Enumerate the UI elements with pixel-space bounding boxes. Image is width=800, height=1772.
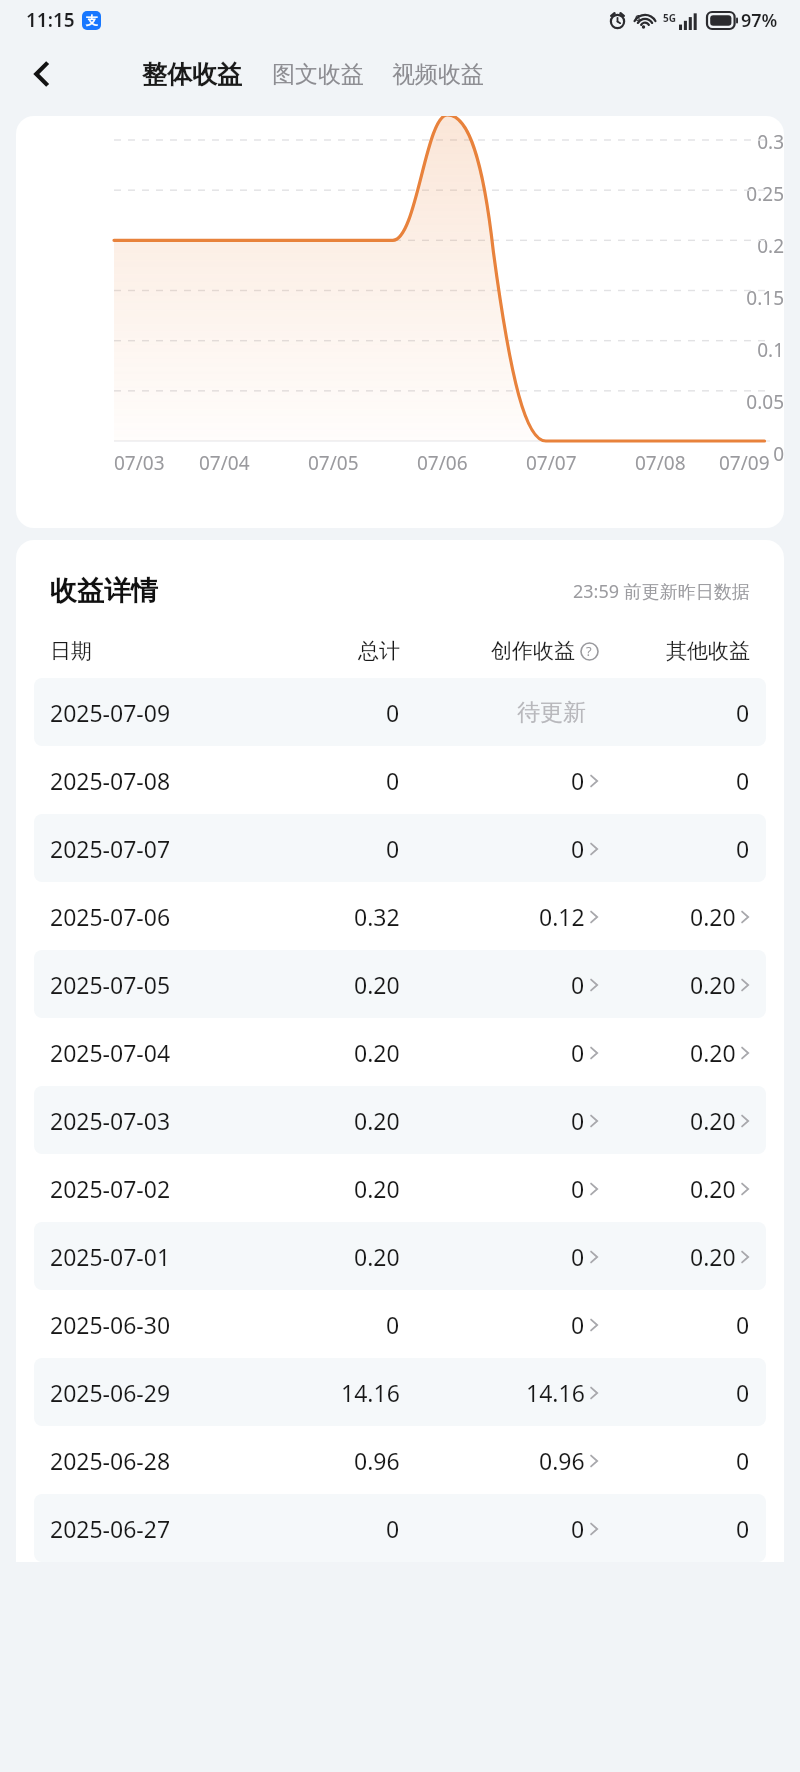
- staticText: 0: [571, 833, 585, 864]
- button[interactable]: Back: [18, 50, 66, 98]
- staticText: 6: [635, 11, 641, 23]
- staticText: 视频收益: [392, 60, 484, 89]
- staticText: 0: [386, 1513, 400, 1544]
- staticText: 07/07: [526, 450, 577, 476]
- staticText: 07/05: [308, 450, 359, 476]
- staticText: 07/08: [635, 450, 686, 476]
- staticText: 0: [736, 765, 750, 796]
- staticText: 0.20: [354, 1105, 400, 1136]
- staticText: 0: [571, 1173, 585, 1204]
- staticText: 07/04: [199, 450, 250, 476]
- staticText: 0.32: [354, 901, 400, 932]
- staticText: 0: [571, 969, 585, 1000]
- staticText: 创作收益: [491, 638, 575, 664]
- staticText: 14.16: [341, 1377, 400, 1408]
- staticText: 0.15: [706, 285, 784, 311]
- staticText: 0: [571, 1513, 585, 1544]
- staticText: 待更新: [517, 698, 586, 727]
- staticText: 总计: [358, 638, 400, 664]
- staticText: 0.20: [690, 1173, 736, 1204]
- staticText: 23:59 前更新昨日数据: [573, 579, 750, 604]
- staticText: 0.3: [706, 129, 784, 155]
- button[interactable]: 2025-07-04: [34, 1018, 766, 1086]
- staticText: 0: [571, 1037, 585, 1068]
- staticText: 2025-07-02: [50, 1173, 171, 1204]
- staticText: 0.20: [690, 1037, 736, 1068]
- staticText: 0.25: [706, 181, 784, 207]
- staticText: 整体收益: [142, 59, 242, 90]
- staticText: 0: [736, 1513, 750, 1544]
- button[interactable]: 2025-07-09: [34, 678, 766, 746]
- staticText: 0: [706, 441, 784, 467]
- staticText: 2025-07-09: [50, 697, 171, 728]
- button[interactable]: Help: [579, 641, 599, 661]
- staticText: 0: [571, 765, 585, 796]
- staticText: 11:15: [26, 7, 75, 33]
- button[interactable]: 图文收益: [268, 54, 368, 95]
- button[interactable]: 2025-07-06: [34, 882, 766, 950]
- staticText: 日期: [50, 638, 92, 664]
- staticText: 0.20: [690, 1105, 736, 1136]
- staticText: 2025-07-05: [50, 969, 171, 1000]
- staticText: 0: [386, 1309, 400, 1340]
- staticText: 2025-07-06: [50, 901, 171, 932]
- staticText: 0: [571, 1309, 585, 1340]
- staticText: 2025-07-08: [50, 765, 171, 796]
- staticText: 0.2: [706, 233, 784, 259]
- button[interactable]: 2025-06-29: [34, 1358, 766, 1426]
- staticText: 5G: [663, 11, 676, 25]
- staticText: 2025-07-03: [50, 1105, 171, 1136]
- staticText: 其他收益: [666, 638, 750, 664]
- staticText: 0.20: [354, 1241, 400, 1272]
- button[interactable]: 2025-07-05: [34, 950, 766, 1018]
- staticText: 0: [386, 833, 400, 864]
- button[interactable]: 整体收益: [138, 53, 246, 96]
- staticText: 0.12: [539, 901, 585, 932]
- staticText: 0: [571, 1105, 585, 1136]
- staticText: ?: [586, 642, 592, 660]
- staticText: 0.20: [690, 901, 736, 932]
- staticText: 支: [86, 13, 98, 28]
- staticText: 2025-07-04: [50, 1037, 171, 1068]
- staticText: 0: [736, 1445, 750, 1476]
- staticText: 07/09: [719, 450, 770, 476]
- staticText: 2025-06-28: [50, 1445, 171, 1476]
- staticText: 97%: [741, 8, 778, 33]
- button[interactable]: 2025-07-02: [34, 1154, 766, 1222]
- button[interactable]: 2025-07-03: [34, 1086, 766, 1154]
- button[interactable]: 2025-07-08: [34, 746, 766, 814]
- staticText: 0.96: [539, 1445, 585, 1476]
- staticText: 收益详情: [50, 574, 158, 608]
- staticText: 2025-06-30: [50, 1309, 171, 1340]
- button[interactable]: 2025-06-27: [34, 1494, 766, 1562]
- button[interactable]: 视频收益: [388, 54, 488, 95]
- staticText: 0: [571, 1241, 585, 1272]
- staticText: 0.05: [706, 389, 784, 415]
- staticText: 0.20: [354, 969, 400, 1000]
- button[interactable]: 2025-07-01: [34, 1222, 766, 1290]
- staticText: 0: [386, 697, 400, 728]
- staticText: 07/06: [417, 450, 468, 476]
- staticText: 0.96: [354, 1445, 400, 1476]
- staticText: 07/03: [114, 450, 165, 476]
- button[interactable]: 2025-07-07: [34, 814, 766, 882]
- staticText: 0: [736, 1309, 750, 1340]
- staticText: 2025-06-27: [50, 1513, 171, 1544]
- staticText: 0: [736, 697, 750, 728]
- staticText: 0.20: [354, 1037, 400, 1068]
- staticText: 2025-06-29: [50, 1377, 171, 1408]
- staticText: 0.1: [706, 337, 784, 363]
- button[interactable]: 2025-06-28: [34, 1426, 766, 1494]
- staticText: 0.20: [690, 969, 736, 1000]
- staticText: 0.20: [690, 1241, 736, 1272]
- staticText: 0.20: [354, 1173, 400, 1204]
- staticText: 2025-07-07: [50, 833, 171, 864]
- staticText: 0: [736, 833, 750, 864]
- staticText: 0: [386, 765, 400, 796]
- staticText: 14.16: [526, 1377, 585, 1408]
- button[interactable]: 2025-06-30: [34, 1290, 766, 1358]
- staticText: 0: [736, 1377, 750, 1408]
- staticText: 2025-07-01: [50, 1241, 171, 1272]
- staticText: 图文收益: [272, 60, 364, 89]
